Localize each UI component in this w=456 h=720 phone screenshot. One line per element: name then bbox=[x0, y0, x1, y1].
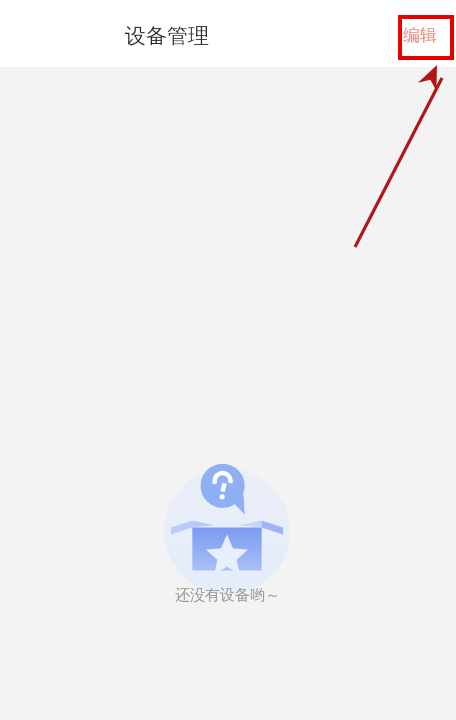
staticText: 还没有设备哟～ bbox=[175, 586, 280, 605]
staticText: 设备管理 bbox=[125, 23, 209, 49]
staticText: 编辑 bbox=[403, 25, 437, 46]
button[interactable]: 编辑 bbox=[389, 17, 451, 54]
